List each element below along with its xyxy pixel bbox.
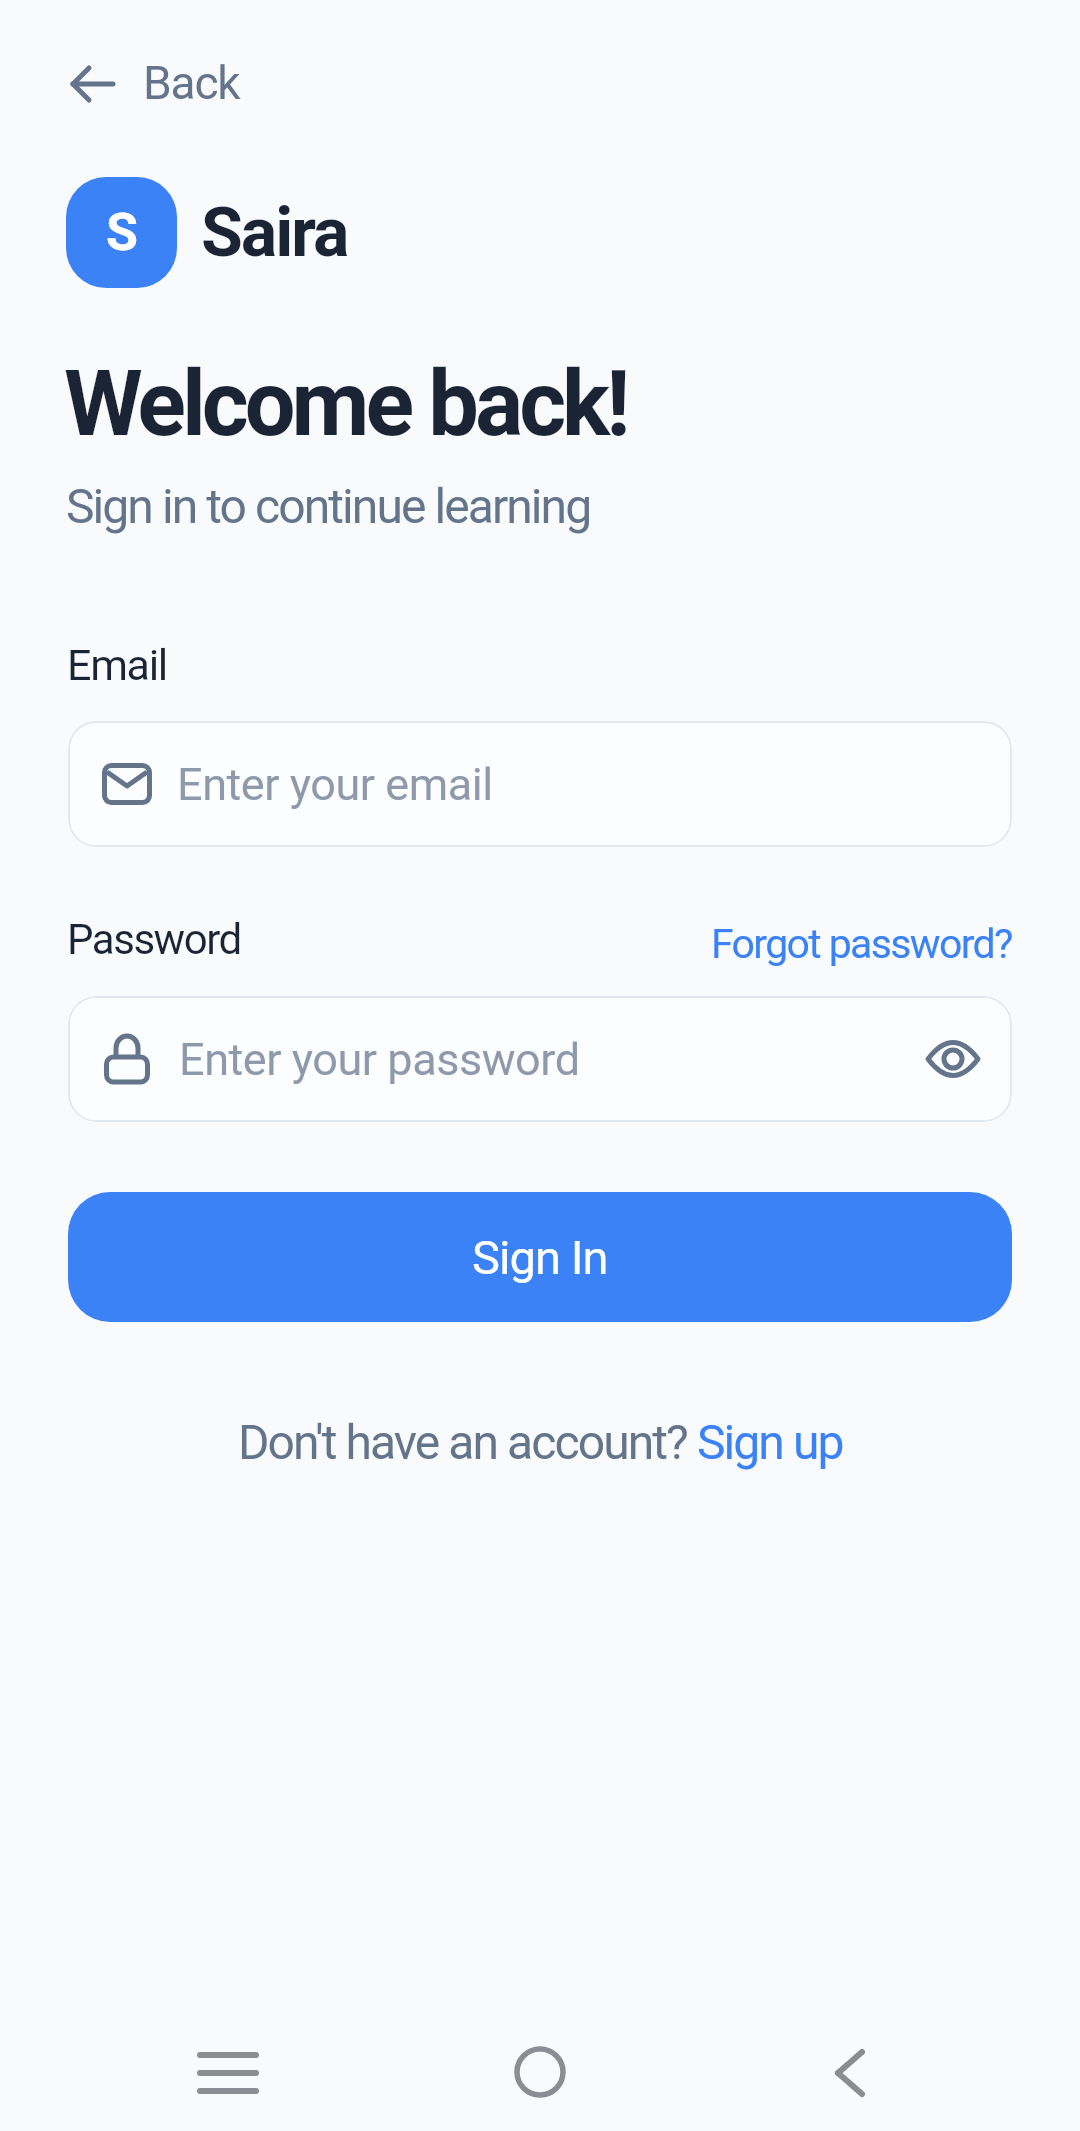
button[interactable]: Enter your password (68, 996, 1012, 1122)
button[interactable] (834, 2049, 866, 2097)
staticText: Email (67, 640, 168, 690)
staticText: Welcome back! (64, 352, 627, 457)
staticText: S (106, 202, 138, 263)
staticText: Enter your email (177, 758, 493, 811)
button[interactable]: Sign up (697, 1414, 843, 1470)
button[interactable] (514, 2046, 566, 2098)
button[interactable] (927, 1039, 979, 1079)
staticText: Back (143, 56, 240, 110)
staticText: Don't have an account? (238, 1414, 697, 1470)
button[interactable] (200, 2052, 256, 2094)
staticText: Enter your password (179, 1033, 580, 1086)
button[interactable]: Enter your email (68, 721, 1012, 847)
button[interactable]: Forgot password? (711, 920, 1012, 968)
staticText: Saira (201, 193, 348, 273)
button[interactable]: Back (70, 56, 240, 110)
staticText: Sign In (472, 1230, 608, 1285)
button[interactable]: Sign In (68, 1192, 1012, 1322)
staticText: Password (67, 915, 241, 964)
staticText: Sign in to continue learning (66, 478, 591, 534)
